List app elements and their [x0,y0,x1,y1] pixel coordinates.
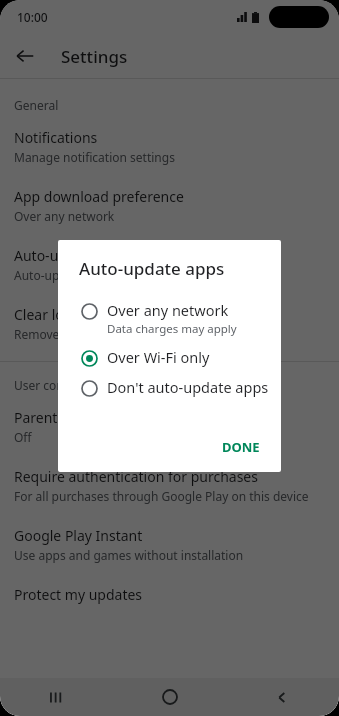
staticText: Data charges may apply [107,321,237,337]
button[interactable]: Over Wi-Fi only [58,342,281,372]
button[interactable]: Home [113,678,226,716]
button[interactable]: Clear local search history [0,294,339,353]
staticText: Over any network [107,300,229,320]
staticText: Settings [61,45,128,68]
staticText: Auto-update apps [14,246,132,265]
staticText: Notifications [14,128,98,147]
staticText: Over Wi-Fi only [107,347,210,367]
button[interactable]: Over any network [58,295,281,342]
button[interactable]: Recent apps [0,678,113,716]
button[interactable]: Parental controls [0,397,339,456]
button[interactable]: Don't auto-update apps [58,372,281,402]
button[interactable]: Notifications [0,117,339,176]
staticText: Use apps and games without installation [14,547,244,563]
button[interactable]: Auto-update apps [0,235,339,294]
staticText: Don't auto-update apps [107,377,269,397]
staticText: For all purchases through Google Play on… [14,488,309,504]
staticText: User controls [14,377,89,393]
staticText: DONE [222,438,260,456]
staticText: Manage notification settings [14,149,175,165]
staticText: Protect my updates [14,585,143,604]
button[interactable]: Back [9,40,41,72]
staticText: Parental controls [14,408,126,427]
staticText: Google Play Instant [14,526,143,545]
button[interactable]: Back [226,678,339,716]
staticText: Clear local search history [14,305,178,324]
staticText: Over any network [14,208,115,224]
staticText: Remove all searches from this device [14,326,222,342]
staticText: General [14,97,59,113]
button[interactable]: DONE [213,432,269,462]
staticText: Require authentication for purchases [14,467,258,486]
staticText: Off [14,429,32,445]
staticText: Auto-update apps over Wi-Fi only [14,267,201,283]
staticText: App download preference [14,187,184,206]
button[interactable]: Require authentication for purchases [0,456,339,515]
staticText: Auto-update apps [79,257,225,280]
staticText: 10:00 [17,9,48,25]
button[interactable]: Google Play Instant [0,515,339,574]
button[interactable]: Protect my updates [0,574,339,615]
button[interactable]: App download preference [0,176,339,235]
